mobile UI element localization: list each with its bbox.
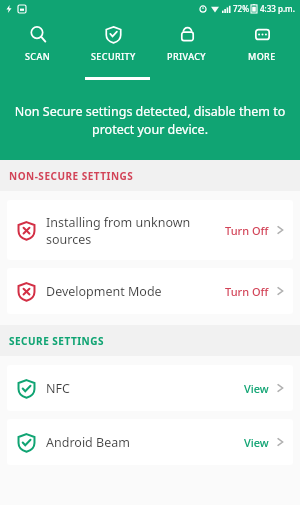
staticText: SECURE SETTINGS bbox=[9, 334, 104, 348]
staticText: NFC bbox=[46, 380, 244, 397]
staticText: View bbox=[244, 435, 269, 450]
staticText: Development Mode bbox=[46, 283, 225, 300]
button[interactable]: Android Beam bbox=[7, 419, 293, 465]
staticText: NON-SECURE SETTINGS bbox=[9, 169, 134, 183]
staticText: PRIVACY bbox=[167, 50, 207, 62]
button[interactable]: SECURITY bbox=[77, 17, 149, 62]
staticText: 4:33 p.m. bbox=[260, 3, 295, 14]
staticText: 72% bbox=[233, 3, 249, 14]
staticText: Android Beam bbox=[46, 434, 244, 451]
staticText: Installing from unknown sources bbox=[46, 214, 225, 247]
button[interactable]: PRIVACY bbox=[151, 17, 223, 62]
staticText: SECURITY bbox=[91, 50, 136, 62]
staticText: SCAN bbox=[25, 50, 51, 62]
button[interactable]: NFC bbox=[7, 365, 293, 411]
staticText: Turn Off bbox=[225, 223, 269, 238]
staticText: MORE bbox=[248, 50, 276, 62]
staticText: Turn Off bbox=[225, 284, 269, 299]
button[interactable]: Installing from unknown sources bbox=[7, 200, 293, 260]
staticText: View bbox=[244, 381, 269, 396]
button[interactable]: Development Mode bbox=[7, 268, 293, 314]
button[interactable]: MORE bbox=[226, 17, 298, 62]
staticText: Non Secure settings detected, disable th… bbox=[14, 103, 286, 138]
button[interactable]: SCAN bbox=[2, 17, 74, 62]
